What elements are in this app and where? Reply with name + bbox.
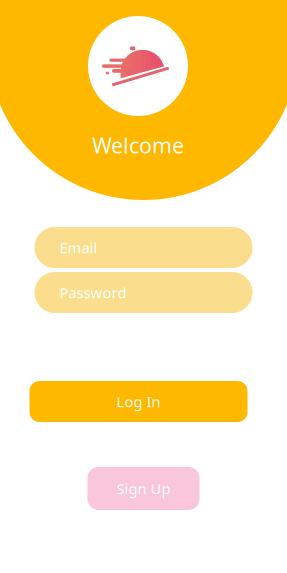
staticText: Email <box>59 238 97 257</box>
staticText: Password <box>59 283 126 302</box>
button[interactable]: Sign Up <box>87 467 199 510</box>
button[interactable]: Email <box>34 227 252 268</box>
staticText: Sign Up <box>116 479 170 498</box>
button[interactable]: Log In <box>29 381 247 422</box>
button[interactable]: Password <box>34 272 252 313</box>
staticText: Welcome <box>92 131 184 159</box>
staticText: Log In <box>116 392 160 411</box>
